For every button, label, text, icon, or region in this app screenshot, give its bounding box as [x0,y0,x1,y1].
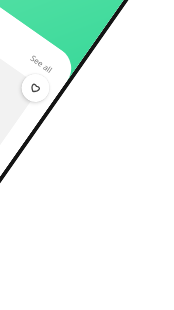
button[interactable]: Favourite [16,68,55,107]
button[interactable] [0,0,41,166]
button[interactable]: See all [28,52,55,75]
